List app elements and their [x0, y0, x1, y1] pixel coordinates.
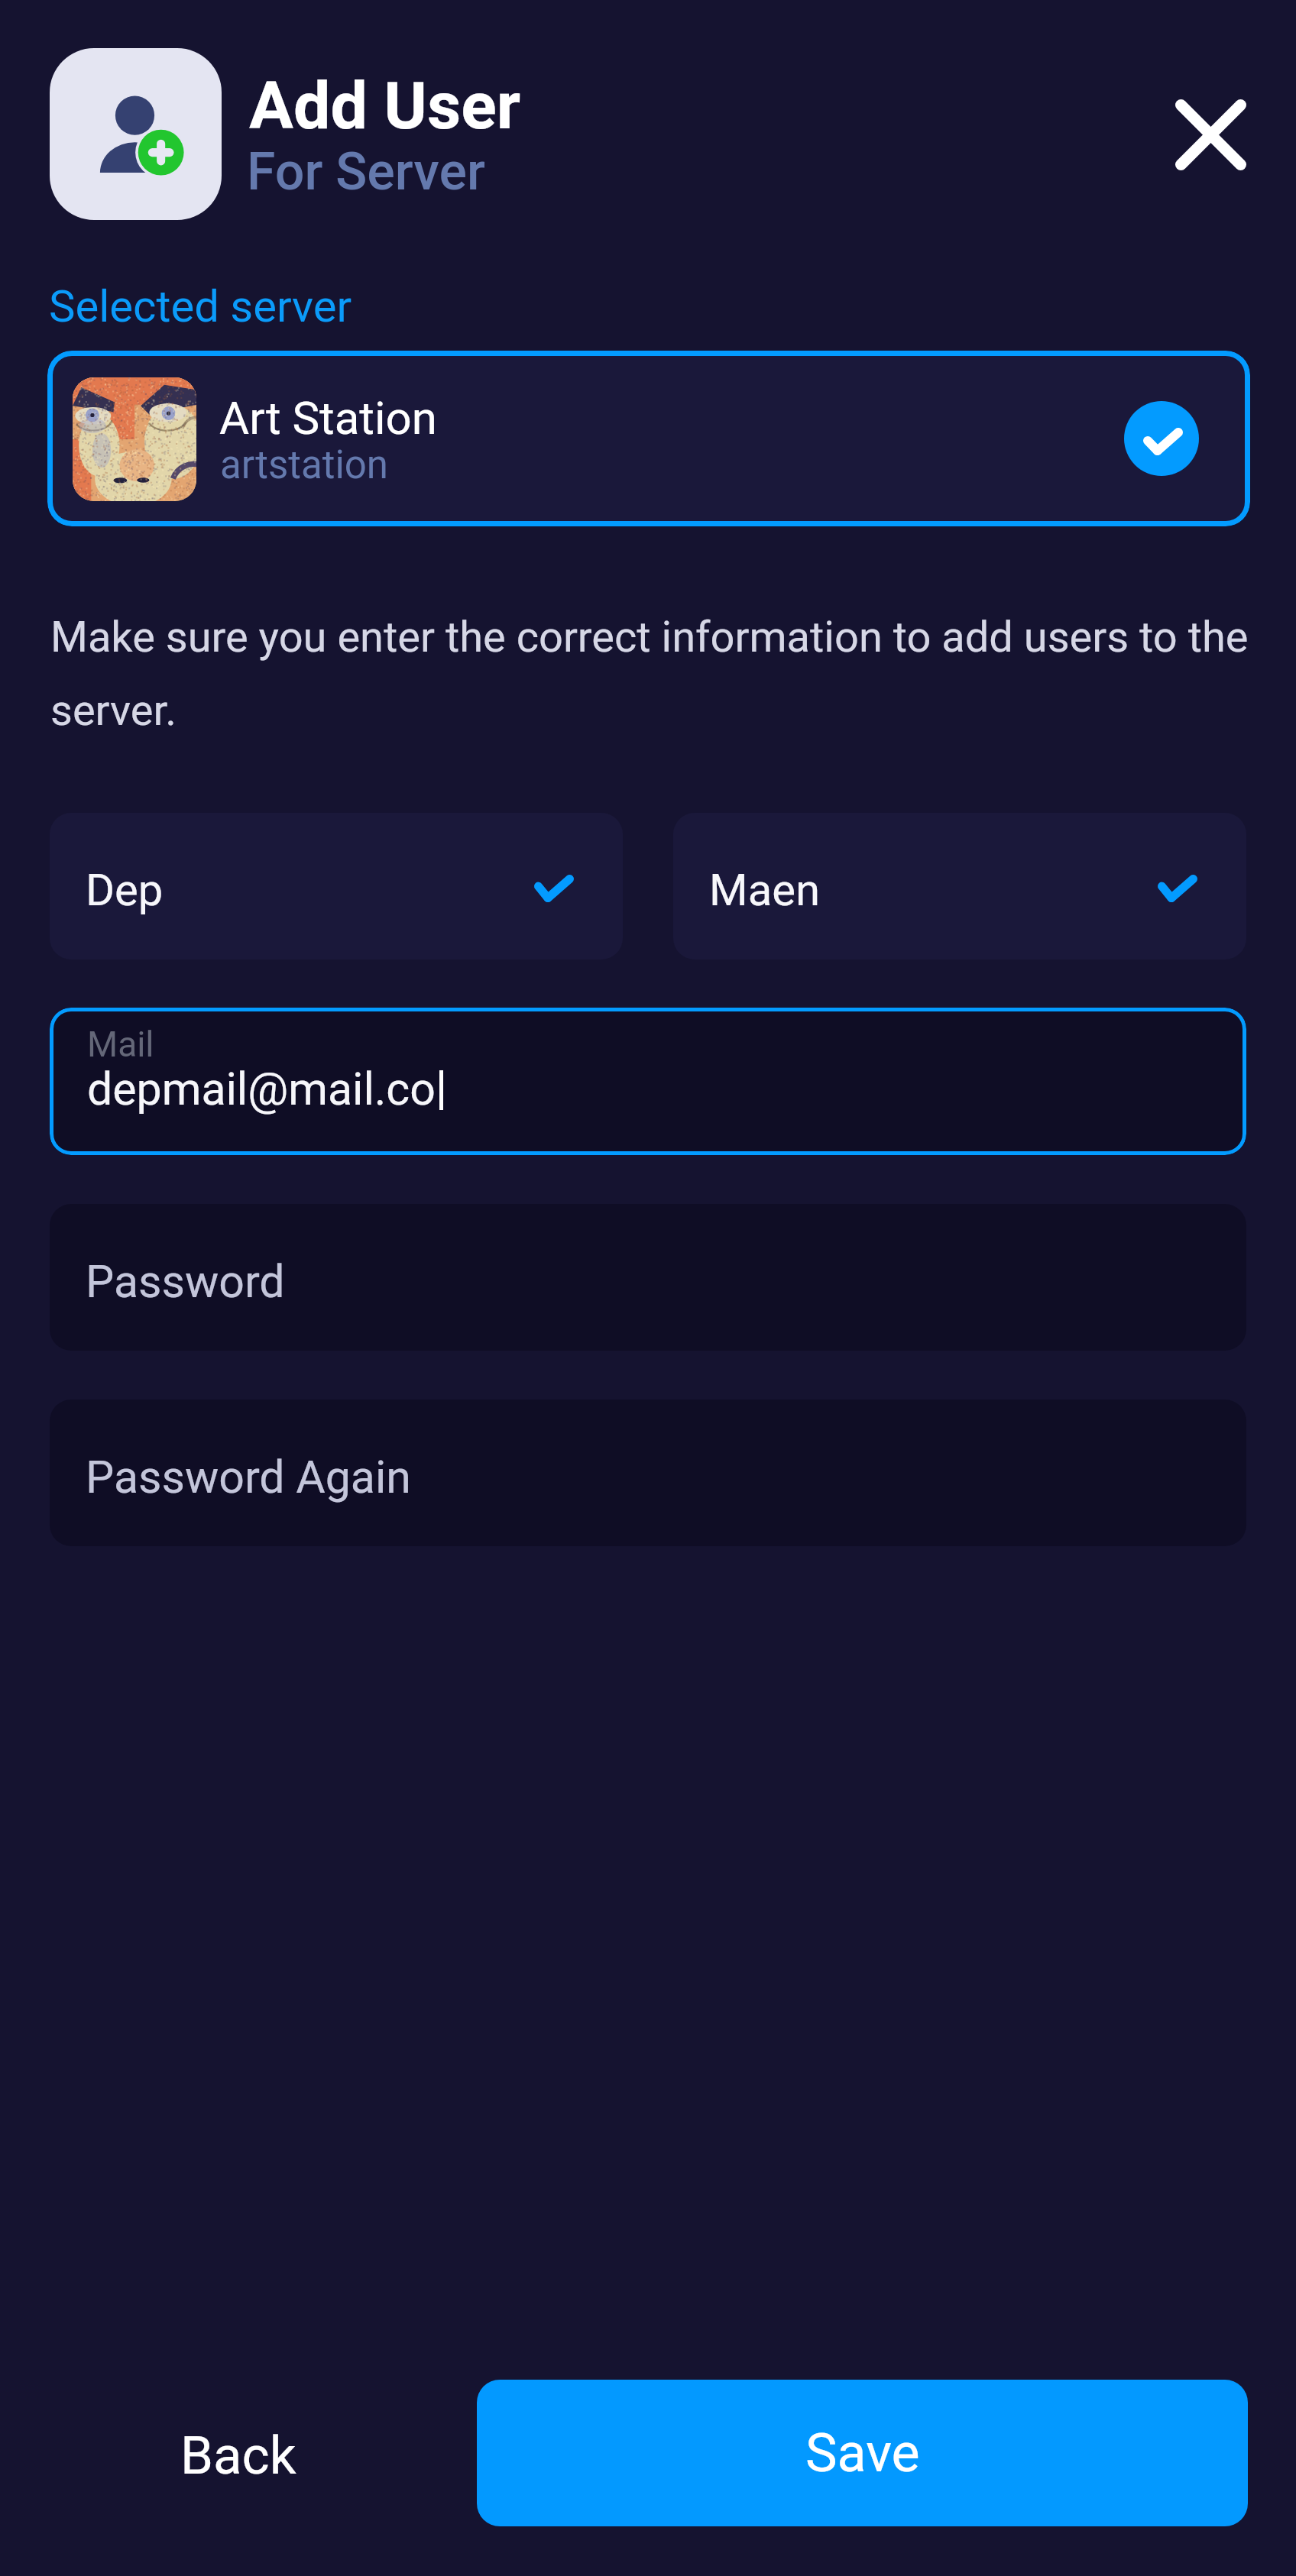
staticText: Art Station [219, 391, 437, 445]
staticText: depmail@mail.co [87, 1063, 436, 1115]
staticText: Mail [87, 1024, 154, 1065]
button[interactable]: Password [50, 1204, 1246, 1351]
staticText: Make sure you enter the correct informat… [50, 612, 1254, 736]
button[interactable]: Maen [673, 813, 1246, 960]
staticText: artstation [220, 442, 389, 488]
button[interactable]: Save [477, 2380, 1248, 2526]
staticText: Maen [709, 864, 820, 916]
button[interactable]: Mail [50, 1008, 1246, 1155]
staticText: Save [805, 2422, 920, 2484]
staticText: Dep [86, 864, 164, 916]
button[interactable]: Dep [50, 813, 623, 960]
button[interactable]: Back [136, 2409, 341, 2501]
staticText: Selected server [49, 280, 352, 332]
staticText: Back [180, 2425, 296, 2487]
staticText: For Server [247, 141, 485, 202]
button[interactable]: Password Again [50, 1400, 1246, 1546]
staticText: Add User [249, 67, 521, 144]
button[interactable]: Close [1157, 81, 1264, 188]
staticText: Password [86, 1255, 285, 1308]
staticText: Password Again [86, 1451, 411, 1503]
button[interactable]: Art Station [47, 351, 1250, 526]
